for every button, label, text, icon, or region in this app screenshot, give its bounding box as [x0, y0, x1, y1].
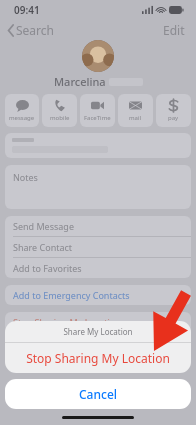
staticText: Notes [13, 171, 38, 183]
button[interactable]: mail [118, 94, 153, 127]
button[interactable]: Notes [5, 165, 191, 209]
staticText: Marcelina [54, 74, 106, 89]
staticText: Stop Sharing My Location [26, 350, 170, 366]
button[interactable]: Stop Sharing My Location [5, 343, 191, 373]
staticText: message [9, 114, 35, 122]
staticText: Send Message [13, 220, 74, 232]
staticText: pay [168, 114, 179, 122]
staticText: mobile [50, 114, 70, 122]
staticText: Search [16, 22, 54, 38]
button[interactable]: Stop Sharing My Location [5, 312, 191, 332]
button[interactable]: pay [156, 94, 191, 127]
staticText: 09:41 [14, 3, 40, 17]
button[interactable]: Add to Emergency Contacts [5, 285, 191, 305]
button[interactable]: FaceTime [80, 94, 115, 127]
staticText: Add to Emergency Contacts [13, 289, 130, 301]
staticText: Edit [163, 22, 185, 38]
staticText: Stop Sharing My Location [13, 316, 121, 328]
staticText: mail [129, 114, 142, 122]
button[interactable]: Cancel [5, 379, 191, 409]
button[interactable]: mobile [42, 94, 77, 127]
button[interactable]: Send Message [5, 216, 191, 237]
staticText: Cancel [79, 386, 118, 402]
button[interactable]: Search [6, 20, 56, 40]
button[interactable]: Share Contact [5, 237, 191, 258]
button[interactable]: message [5, 94, 39, 127]
staticText: Share Contact [13, 241, 73, 253]
button[interactable]: Add to Favorites [5, 258, 191, 278]
button[interactable]: Edit [160, 20, 188, 40]
staticText: FaceTime [84, 114, 111, 122]
staticText: Add to Favorites [13, 262, 82, 274]
button[interactable] [5, 133, 191, 158]
staticText: Share My Location [63, 326, 133, 337]
